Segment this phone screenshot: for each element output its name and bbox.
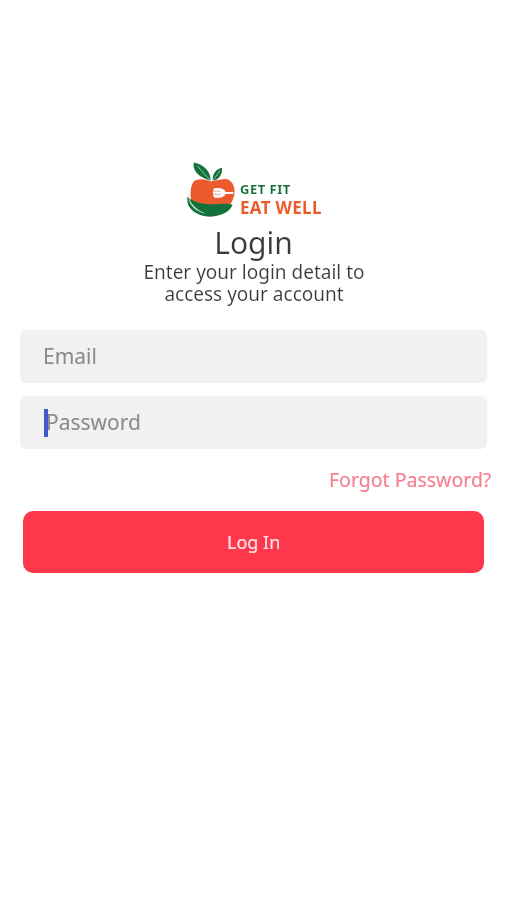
staticText: Password	[46, 408, 141, 437]
button[interactable]: Forgot Password?	[327, 464, 494, 495]
button[interactable]: Password	[20, 396, 487, 449]
staticText: Email	[43, 342, 97, 371]
button[interactable]: Log In	[23, 511, 484, 573]
staticText: Login	[214, 222, 293, 263]
staticText: Log In	[227, 530, 281, 555]
staticText: GET FIT	[240, 180, 291, 198]
staticText: EAT WELL	[240, 196, 322, 219]
other: Get Fit Eat Well logo	[185, 160, 322, 216]
button[interactable]: Email	[20, 330, 487, 383]
staticText: Enter your login detail to access your a…	[143, 259, 365, 307]
